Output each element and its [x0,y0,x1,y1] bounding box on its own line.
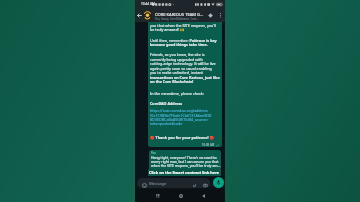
staticText: CORE KARIOUS TEAM G... [155,12,204,18]
staticText: You, Group, Core Multiverse, Core... [155,17,199,21]
staticText: CoreDAO Address [150,101,183,106]
button[interactable]: Group photo [143,11,152,20]
staticText: be truly amazed! 🙌 [150,27,185,32]
button[interactable]: You [149,150,221,170]
staticText: again pretty soon so usual enabling [150,66,212,71]
staticText: you to make unlimited, instant [150,70,203,75]
button[interactable]: you that when the SITE reopens, you'll [148,14,222,147]
staticText: you that when the SITE reopens, you'll [150,23,217,28]
button[interactable]: Click on the Smart contract link here [148,169,221,176]
staticText: tokenpocket#code [150,121,183,126]
staticText: /0x1C9B5b7F6afe1Cb6131A6ee9DD [150,113,212,118]
staticText: Until then, remember: Patience is key [150,38,217,43]
staticText: Click on the Smart contract link here [149,170,220,175]
staticText: currently being upgraded with [150,57,203,62]
staticText: 🔴 Thank you for your patience! 🔴 [150,135,214,140]
staticText: on the Core Blockchain! [150,79,194,84]
button[interactable]: Home [177,192,185,200]
button[interactable]: Camera [202,182,208,188]
staticText: when the SITE reopens, you'll be truly a… [151,163,221,168]
button[interactable]: Recent apps [154,192,162,200]
button[interactable]: Back [136,12,143,19]
button[interactable]: Voice message [213,177,224,188]
staticText: Message [149,181,167,187]
button[interactable]: Video call [207,12,214,19]
staticText: Friends, as you know, the site is [150,52,205,57]
staticText: 8D3EDBCa6bA5GfE7b0f4_source= [150,117,209,122]
staticText: In the meantime, please check: [150,91,204,96]
button[interactable]: CORE KARIOUS TEAM G... [154,9,204,21]
staticText: 10:08 AM [202,143,215,147]
staticText: because good things take time. [150,42,208,47]
staticText: transactions on Core Karious, just like [150,75,220,80]
staticText: cutting-edge technology. It will be live [150,61,216,66]
button[interactable]: Emoji [137,178,210,188]
staticText: You [151,151,156,155]
staticText: Hang tight, everyone! There's no need to [151,155,217,160]
button[interactable]: Attach [191,182,197,188]
button[interactable]: Back [199,192,207,200]
button[interactable]: Emoji [141,182,147,188]
button[interactable]: More options [217,12,223,18]
staticText: https://scan.coredao.org/address [150,108,208,113]
staticText: 10:44 AM [141,2,155,6]
staticText: worry right now, but I can assure you th… [151,159,219,164]
